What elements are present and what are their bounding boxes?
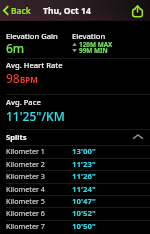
- staticText: Kilometer 2: [6, 159, 45, 169]
- staticText: 11'23": [72, 159, 96, 170]
- staticText: 10'52": [72, 208, 96, 219]
- staticText: 13'00": [72, 146, 96, 157]
- button[interactable]: Kilometer 7: [0, 220, 150, 232]
- staticText: 6m: [6, 40, 25, 56]
- staticText: 10'50": [72, 221, 96, 232]
- button[interactable]: Kilometer 3: [0, 170, 150, 182]
- staticText: Splits: [6, 132, 27, 142]
- staticText: 98: [6, 70, 20, 86]
- staticText: 11'25"/KM: [6, 108, 65, 124]
- staticText: Avg. Pace: [6, 97, 41, 107]
- staticText: 11'26": [72, 171, 96, 182]
- staticText: 11'24": [72, 184, 96, 195]
- staticText: Elevation: [72, 31, 106, 41]
- button[interactable]: Kilometer 6: [0, 207, 150, 219]
- button[interactable]: Kilometer 2: [0, 158, 150, 170]
- staticText: Kilometer 4: [6, 184, 45, 194]
- staticText: Kilometer 3: [6, 171, 45, 181]
- button[interactable]: Share: [129, 1, 146, 20]
- staticText: Kilometer 1: [6, 146, 45, 156]
- button[interactable]: Kilometer 4: [0, 183, 150, 195]
- button[interactable]: Kilometer 5: [0, 195, 150, 207]
- button[interactable]: Splits: [0, 128, 150, 145]
- staticText: Kilometer 7: [6, 221, 45, 231]
- staticText: Elevation Gain: [6, 31, 58, 41]
- staticText: 120M MAX: [79, 40, 113, 49]
- staticText: BPM: [20, 74, 38, 85]
- staticText: 10'47": [72, 196, 96, 207]
- staticText: Kilometer 5: [6, 196, 45, 206]
- button[interactable]: Back: [1, 2, 33, 19]
- staticText: Thu, Oct 14: [43, 5, 91, 17]
- staticText: Back: [11, 5, 31, 16]
- staticText: Avg. Heart Rate: [6, 60, 63, 70]
- staticText: 99M MIN: [79, 46, 108, 55]
- staticText: Kilometer 6: [6, 208, 45, 218]
- button[interactable]: Kilometer 1: [0, 145, 150, 157]
